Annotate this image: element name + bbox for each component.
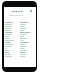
staticText: APIs xyxy=(20,39,24,41)
staticText: Developers xyxy=(20,31,31,33)
staticText: Photos xyxy=(20,27,26,29)
staticText: Guides xyxy=(5,53,11,55)
staticText: spot xyxy=(18,9,24,12)
staticText: Samples xyxy=(20,37,28,39)
staticText: Browser xyxy=(5,33,12,35)
button[interactable]: Console xyxy=(20,33,35,35)
staticText: About xyxy=(20,43,26,45)
staticText: Legal xyxy=(20,51,26,53)
staticText: Docs xyxy=(20,35,25,37)
button[interactable]: Privacy xyxy=(20,53,35,55)
button[interactable]: Compute xyxy=(5,43,20,45)
staticText: Press xyxy=(20,47,25,49)
staticText: AI xyxy=(5,47,7,49)
staticText: Privacy xyxy=(20,53,26,55)
staticText: Contact xyxy=(20,49,27,51)
button[interactable]: Contact xyxy=(20,49,35,51)
staticText: Company xyxy=(20,41,29,43)
staticText: Samples xyxy=(5,55,13,57)
button[interactable]: Samples xyxy=(20,37,35,39)
button[interactable]: Cloud xyxy=(5,41,20,43)
button[interactable]: Android xyxy=(5,21,20,23)
staticText: Chrome xyxy=(5,31,13,33)
button[interactable]: AI xyxy=(5,47,20,49)
button[interactable]: Search this blog xyxy=(9,14,24,17)
button[interactable]: Blog xyxy=(12,9,18,12)
staticText: Design xyxy=(5,29,11,31)
staticText: Releases xyxy=(5,25,13,27)
button[interactable]: About xyxy=(20,43,35,45)
staticText: Search xyxy=(20,23,26,25)
button[interactable]: Docs xyxy=(5,51,20,53)
button[interactable]: APIs xyxy=(20,39,35,41)
button[interactable]: Docs xyxy=(20,35,35,37)
button[interactable]: Browser xyxy=(5,33,20,35)
button[interactable]: Tools xyxy=(5,37,20,39)
button[interactable]: Design xyxy=(5,29,20,31)
button[interactable]: Maps xyxy=(20,25,35,27)
button[interactable]: Storage xyxy=(5,45,20,47)
staticText: Maps xyxy=(20,25,25,27)
button[interactable]: Data xyxy=(5,49,20,51)
staticText: Android xyxy=(5,21,13,23)
staticText: Updates xyxy=(5,23,13,25)
button[interactable]: Legal xyxy=(20,51,35,53)
button[interactable]: Updates xyxy=(5,23,20,25)
button[interactable]: Chrome xyxy=(5,31,20,33)
staticText: Terms xyxy=(20,55,26,57)
staticText: Products xyxy=(20,21,29,23)
staticText: Storage xyxy=(5,45,12,47)
button[interactable]: Samples xyxy=(5,55,20,57)
staticText: Console xyxy=(20,33,27,35)
button[interactable]: Guides xyxy=(5,53,20,55)
button[interactable]: Company xyxy=(20,41,35,43)
button[interactable]: Drive xyxy=(20,29,35,31)
button[interactable]: Releases xyxy=(5,25,20,27)
button[interactable]: Products xyxy=(20,21,35,23)
staticText: Data xyxy=(5,49,9,51)
button[interactable]: Press xyxy=(20,47,35,49)
button[interactable]: Terms xyxy=(20,55,35,57)
button[interactable]: Extensions xyxy=(5,39,20,41)
button[interactable]: Photos xyxy=(20,27,35,29)
staticText: Docs xyxy=(5,51,10,53)
staticText: Web xyxy=(5,35,9,37)
button[interactable]: Devices xyxy=(5,27,20,29)
button[interactable]: Careers xyxy=(20,45,35,47)
staticText: Devices xyxy=(5,27,12,29)
button[interactable]: Developers xyxy=(20,31,35,33)
staticText: Drive xyxy=(20,29,25,31)
staticText: Compute xyxy=(5,43,13,45)
button[interactable]: Web xyxy=(5,35,20,37)
staticText: Cloud xyxy=(5,41,11,43)
button[interactable]: Search xyxy=(20,23,35,25)
staticText: Extensions xyxy=(5,39,15,41)
staticText: Tools xyxy=(5,37,10,39)
staticText: Careers xyxy=(20,45,27,47)
